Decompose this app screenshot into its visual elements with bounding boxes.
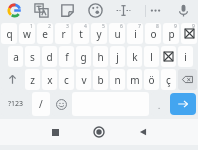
button[interactable]: w [19, 23, 35, 44]
button[interactable]: d [42, 46, 57, 67]
button[interactable]: 9 [181, 23, 197, 44]
button[interactable]: Emoji [52, 92, 70, 116]
button[interactable]: i [178, 46, 193, 67]
staticText: 3 [66, 23, 69, 30]
button[interactable]: p [163, 23, 179, 44]
button[interactable]: Voice input [175, 2, 192, 19]
button[interactable]: z [25, 69, 40, 90]
staticText: t [79, 27, 83, 41]
staticText: c [64, 73, 69, 87]
button[interactable]: Translate [33, 2, 50, 19]
button[interactable]: g [76, 46, 91, 67]
staticText: 9 [192, 23, 195, 30]
staticText: s [30, 50, 35, 64]
button[interactable]: u [109, 23, 125, 44]
button[interactable]: c [59, 69, 74, 90]
staticText: 4 [84, 23, 87, 30]
button[interactable]: Stickers [59, 2, 76, 19]
staticText: g [80, 50, 87, 64]
button[interactable]: f [59, 46, 74, 67]
button[interactable]: ç [161, 69, 176, 90]
button[interactable]: . [151, 92, 167, 116]
staticText: 7 [138, 23, 141, 30]
staticText: m [130, 73, 140, 87]
staticText: y [96, 27, 102, 41]
staticText: q [6, 27, 13, 41]
staticText: ?123 [8, 99, 24, 109]
button[interactable]: Home [88, 121, 110, 143]
button[interactable]: m [127, 69, 142, 90]
button[interactable]: j [110, 46, 125, 67]
button[interactable]: y [91, 23, 107, 44]
button[interactable]: x [42, 69, 57, 90]
staticText: h [97, 50, 104, 64]
staticText: n [114, 73, 121, 87]
button[interactable]: ö [144, 69, 159, 90]
button[interactable]: Text editing [115, 2, 132, 19]
button[interactable]: Back [132, 121, 154, 143]
staticText: 6 [120, 23, 123, 30]
staticText: l [150, 50, 153, 64]
staticText: ö [148, 73, 155, 87]
staticText: a [13, 50, 19, 64]
staticText: 5 [102, 23, 105, 30]
button[interactable]: t [73, 23, 89, 44]
button[interactable]: More options [147, 2, 164, 19]
staticText: i [134, 27, 137, 41]
button[interactable]: o [145, 23, 161, 44]
button[interactable]: l [144, 46, 159, 67]
button[interactable]: Backspace [178, 69, 197, 90]
button[interactable] [161, 46, 176, 67]
staticText: 8 [156, 23, 159, 30]
staticText: e [42, 27, 48, 41]
button[interactable]: Recents [44, 121, 66, 143]
staticText: p [168, 27, 175, 41]
staticText: r [61, 27, 66, 41]
staticText: v [81, 73, 87, 87]
button[interactable]: r [55, 23, 71, 44]
staticText: 1 [30, 23, 33, 30]
button[interactable]: i [127, 23, 143, 44]
staticText: k [132, 50, 138, 64]
button[interactable]: b [93, 69, 108, 90]
button[interactable]: k [127, 46, 142, 67]
button[interactable]: ?123 [1, 92, 30, 116]
staticText: b [97, 73, 104, 87]
button[interactable]: Enter [170, 93, 196, 115]
staticText: 9 [174, 23, 177, 30]
button[interactable]: / [32, 92, 50, 116]
staticText: z [30, 73, 35, 87]
button[interactable]: Shift [1, 69, 23, 90]
staticText: x [47, 73, 53, 87]
staticText: f [65, 50, 69, 64]
staticText: ç [166, 73, 171, 87]
staticText: j [116, 50, 119, 64]
staticText: i [184, 50, 187, 64]
staticText: 2 [48, 23, 51, 30]
button[interactable]: a [8, 46, 23, 67]
staticText: / [39, 97, 43, 111]
button[interactable]: s [25, 46, 40, 67]
staticText: . [158, 100, 161, 111]
staticText: w [23, 27, 31, 41]
button[interactable]: v [76, 69, 91, 90]
staticText: o [150, 27, 157, 41]
button[interactable]: q [1, 23, 17, 44]
button[interactable]: e [37, 23, 53, 44]
staticText: d [46, 50, 53, 64]
button[interactable]: Google [6, 2, 23, 19]
button[interactable]: Themes [87, 2, 104, 19]
staticText: u [114, 27, 121, 41]
button[interactable]: h [93, 46, 108, 67]
button[interactable]: n [110, 69, 125, 90]
